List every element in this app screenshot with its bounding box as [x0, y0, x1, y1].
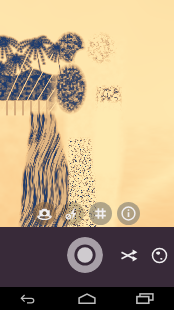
button[interactable]: Home [58, 287, 116, 310]
button[interactable]: Recents [116, 287, 174, 310]
button[interactable]: Info [117, 202, 140, 225]
button[interactable]: Flash off [61, 202, 84, 225]
button[interactable]: Switch camera [33, 202, 56, 225]
button[interactable]: Shuffle [119, 245, 140, 266]
button[interactable]: Back [0, 287, 58, 310]
button[interactable]: Effects [150, 246, 169, 265]
image: Camera preview [0, 0, 174, 227]
button[interactable]: Grid [89, 202, 112, 225]
button[interactable]: Shutter [67, 237, 103, 273]
